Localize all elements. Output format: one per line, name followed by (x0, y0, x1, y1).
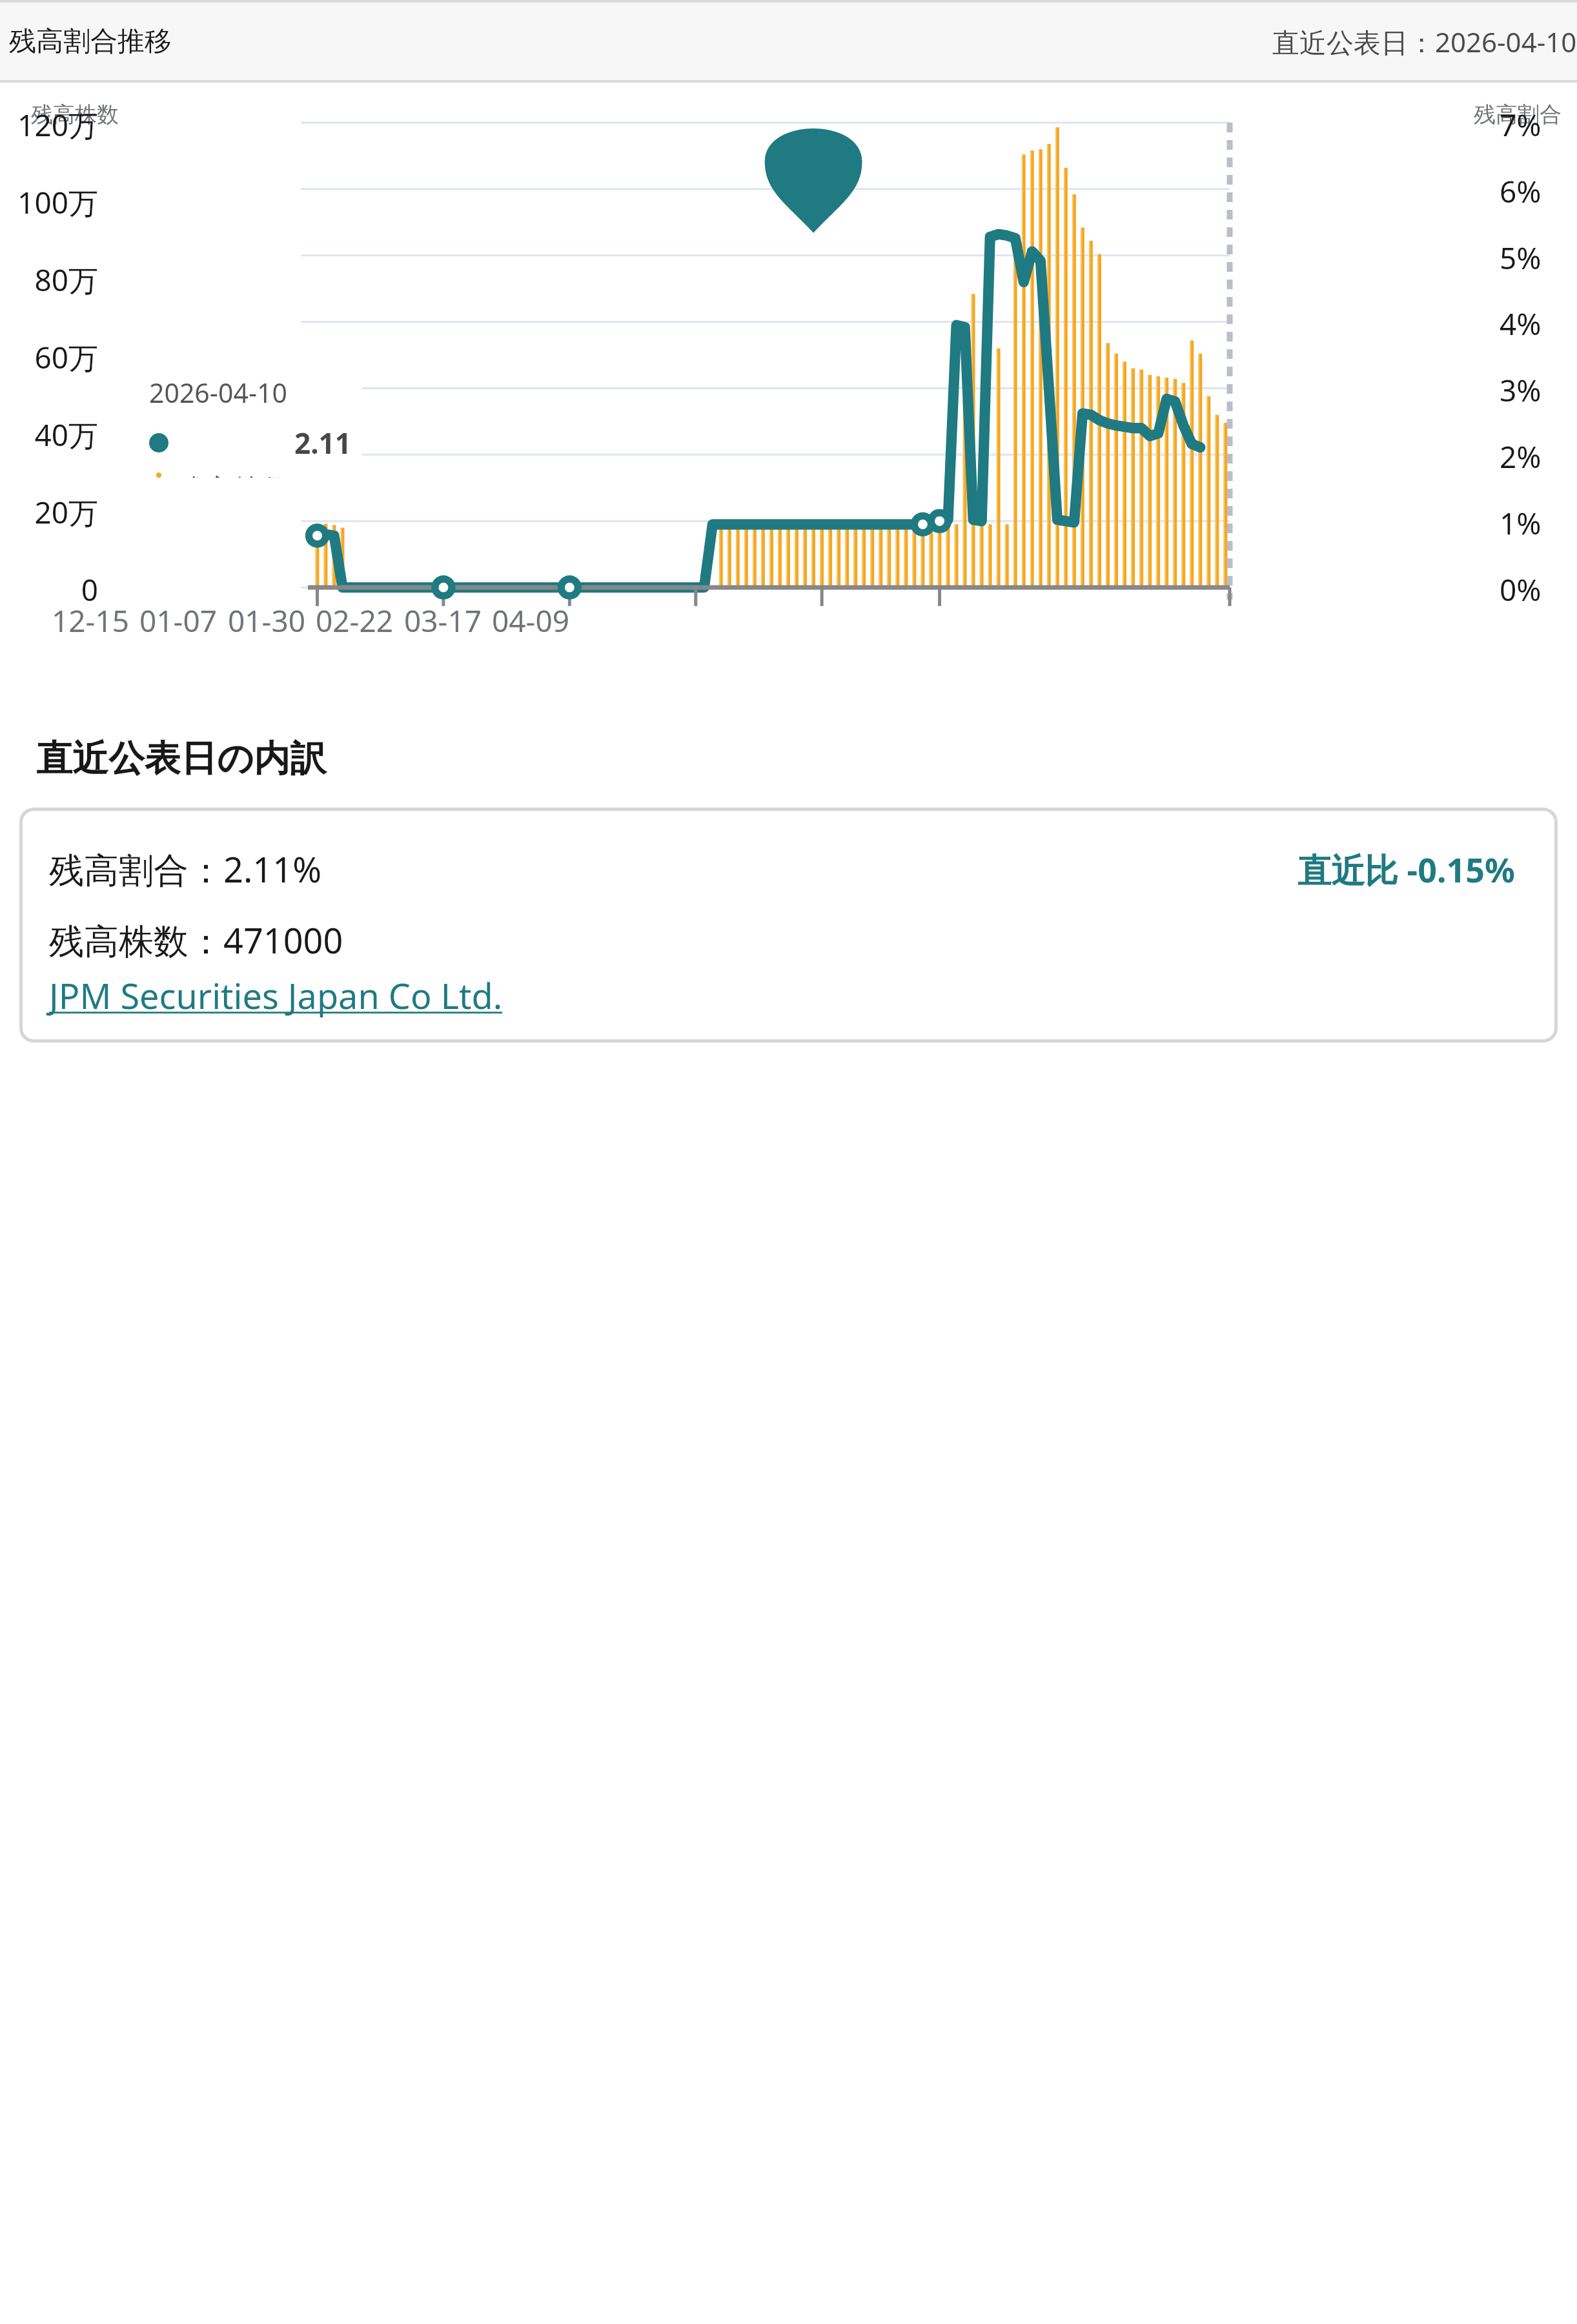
staticText: 直近公表日：2026-04-10 (1272, 23, 1577, 60)
staticText: 03-17 (378, 600, 507, 641)
staticText: 2.11 (294, 423, 351, 462)
staticText: 60万 (1, 337, 98, 378)
staticText: 残高割合 (1474, 101, 1562, 128)
button[interactable]: 残高割合推移 (0, 0, 1577, 83)
staticText: 120万 (1, 105, 98, 145)
staticText: 100万 (1, 182, 98, 223)
staticText: 0 (1, 569, 98, 610)
staticText: 直近公表日の内訳 (36, 736, 327, 782)
staticText: 直近比 -0.15% (1297, 846, 1515, 892)
staticText: 7% (1500, 105, 1572, 145)
staticText: 0% (1500, 569, 1572, 610)
button[interactable]: JPM Securities Japan Co Ltd. (49, 972, 503, 1019)
staticText: 01-07 (114, 600, 243, 641)
staticText: 残高割合推移 (9, 25, 172, 59)
staticText: 2026-04-10 (149, 374, 288, 411)
staticText: 5% (1500, 238, 1572, 278)
staticText: 残高株数 (31, 101, 119, 128)
staticText: 02-22 (290, 600, 419, 641)
staticText: 12-15 (26, 600, 155, 641)
staticText: JPM Securities Japan Co Ltd. (49, 972, 503, 1019)
staticText: 残高割合：2.11% (49, 845, 322, 893)
staticText: 6% (1500, 171, 1572, 212)
staticText: 04-09 (466, 600, 595, 641)
staticText: 20万 (1, 492, 98, 533)
staticText: 4% (1500, 303, 1572, 344)
staticText: 残高株数 (176, 473, 290, 478)
staticText: 3% (1500, 370, 1572, 411)
button[interactable]: 2026-04-10 (134, 360, 361, 478)
staticText: 01-30 (202, 600, 331, 641)
button[interactable]: 残高割合：2.11% (19, 808, 1558, 1043)
staticText: 残高株数：471000 (49, 916, 343, 964)
staticText: 80万 (1, 260, 98, 300)
staticText: 40万 (1, 414, 98, 455)
staticText: 1% (1500, 503, 1572, 544)
staticText: 2% (1500, 436, 1572, 477)
